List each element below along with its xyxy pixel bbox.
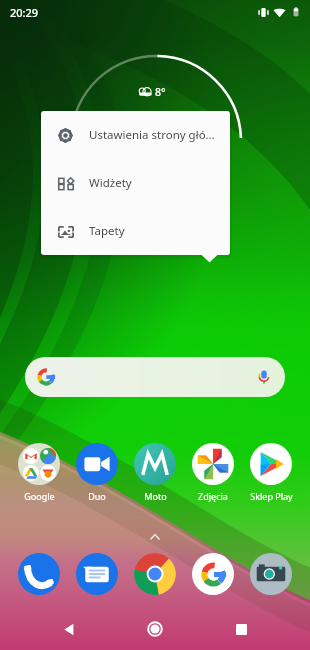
- button[interactable]: Zdjęcia: [186, 443, 240, 502]
- staticText: Moto: [144, 490, 167, 502]
- button[interactable]: Ustawienia strony głó…: [41, 111, 230, 159]
- button[interactable]: Moto: [128, 443, 182, 502]
- button[interactable]: Google Search: [186, 553, 240, 595]
- button[interactable]: Messages: [70, 553, 124, 595]
- button[interactable]: Duo: [70, 443, 124, 502]
- staticText: Ustawienia strony głó…: [89, 127, 215, 143]
- button[interactable]: [25, 357, 285, 397]
- button[interactable]: Home: [138, 612, 172, 646]
- staticText: Zdjęcia: [198, 490, 228, 502]
- button[interactable]: Back: [52, 612, 86, 646]
- button[interactable]: Chrome: [128, 553, 182, 595]
- staticText: Sklep Play: [250, 490, 293, 502]
- button[interactable]: Tapety: [41, 207, 230, 255]
- button[interactable]: Google: [12, 443, 66, 502]
- button[interactable]: Widżety: [41, 159, 230, 207]
- staticText: 8°: [155, 85, 166, 99]
- staticText: Google: [24, 490, 55, 502]
- button[interactable]: Recents: [224, 612, 258, 646]
- staticText: Widżety: [89, 175, 132, 191]
- button[interactable]: Camera: [244, 553, 298, 595]
- button[interactable]: Phone: [12, 553, 66, 595]
- staticText: 20:29: [10, 5, 39, 20]
- staticText: Duo: [88, 490, 106, 502]
- staticText: Tapety: [89, 223, 125, 239]
- button[interactable]: Sklep Play: [244, 443, 298, 502]
